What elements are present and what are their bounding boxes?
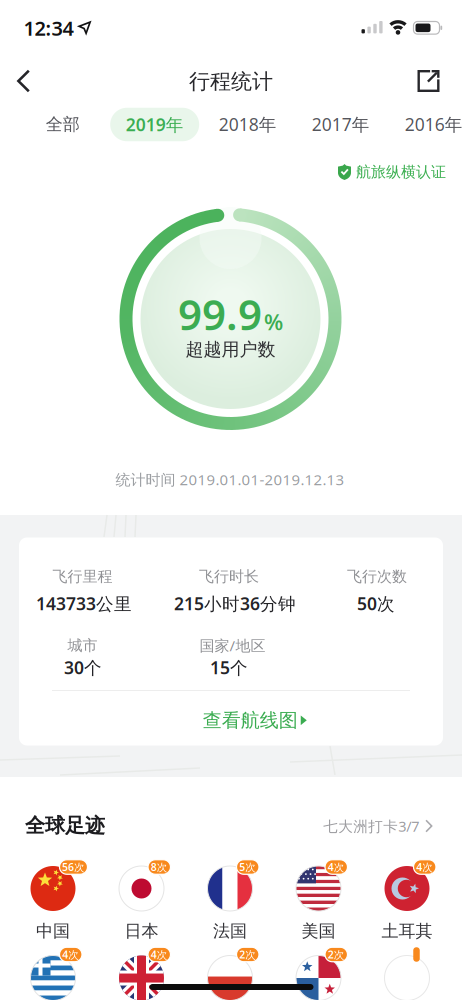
button[interactable]: 4次 bbox=[288, 848, 348, 940]
staticText: 4次 bbox=[416, 860, 433, 874]
staticText: 中国 bbox=[36, 920, 70, 942]
staticText: 全部 bbox=[46, 114, 80, 135]
staticText: 12:34 bbox=[23, 14, 73, 42]
staticText: 30个 bbox=[64, 656, 102, 679]
staticText: 土耳其 bbox=[381, 920, 432, 942]
button[interactable]: 56次 bbox=[23, 848, 83, 940]
staticText: 2017年 bbox=[312, 112, 370, 136]
staticText: 城市 bbox=[67, 636, 97, 655]
staticText: 统计时间 2019.01.01-2019.12.13 bbox=[115, 469, 344, 490]
button[interactable]: 2017年 bbox=[296, 107, 385, 141]
button[interactable]: 七大洲打卡3/7 bbox=[323, 816, 433, 836]
staticText: 99.9 bbox=[178, 285, 262, 343]
button[interactable]: 波兰 bbox=[200, 935, 260, 1000]
staticText: 飞行次数 bbox=[347, 567, 407, 586]
button[interactable]: 查看航线图 bbox=[203, 708, 307, 732]
button[interactable]: Back bbox=[2, 59, 46, 102]
button[interactable]: 5次 bbox=[200, 848, 260, 940]
staticText: 法国 bbox=[213, 920, 247, 942]
staticText: 2016年 bbox=[405, 112, 462, 136]
staticText: 超越用户数 bbox=[185, 338, 275, 361]
staticText: 8次 bbox=[151, 860, 168, 874]
staticText: 2019年 bbox=[126, 113, 184, 136]
staticText: 215小时36分钟 bbox=[174, 592, 296, 615]
button[interactable]: 全部 bbox=[28, 107, 98, 141]
button[interactable]: 更多国家 bbox=[377, 935, 437, 1000]
button[interactable]: 希腊 bbox=[23, 935, 83, 1000]
staticText: 4次 bbox=[328, 860, 345, 874]
staticText: 全球足迹 bbox=[25, 813, 105, 838]
staticText: 日本 bbox=[124, 920, 158, 942]
button[interactable]: 2018年 bbox=[203, 107, 292, 141]
staticText: 50次 bbox=[357, 592, 395, 615]
staticText: 4次 bbox=[62, 947, 79, 962]
staticText: 2次 bbox=[239, 947, 256, 962]
staticText: 5次 bbox=[239, 860, 256, 874]
button[interactable]: 英国 bbox=[111, 935, 171, 1000]
staticText: 4次 bbox=[151, 947, 168, 962]
staticText: 飞行时长 bbox=[199, 567, 259, 586]
staticText: 行程统计 bbox=[189, 68, 273, 95]
staticText: 2次 bbox=[328, 947, 345, 962]
staticText: 2018年 bbox=[219, 112, 277, 136]
staticText: 查看航线图 bbox=[203, 708, 298, 732]
button[interactable]: 2019年 bbox=[110, 108, 199, 141]
staticText: 143733公里 bbox=[36, 592, 132, 615]
button[interactable]: 4次 bbox=[377, 848, 437, 940]
staticText: 国家/地区 bbox=[199, 635, 265, 656]
button[interactable]: 航旅纵横认证 bbox=[338, 163, 446, 181]
button[interactable]: 巴拿马 bbox=[288, 935, 348, 1000]
staticText: % bbox=[264, 307, 283, 337]
staticText: 美国 bbox=[301, 920, 335, 942]
staticText: 航旅纵横认证 bbox=[356, 163, 446, 181]
staticText: 七大洲打卡3/7 bbox=[323, 816, 419, 836]
staticText: 56次 bbox=[62, 860, 85, 874]
staticText: 15个 bbox=[210, 656, 248, 679]
staticText: 飞行里程 bbox=[52, 567, 112, 586]
button[interactable]: Share bbox=[417, 70, 439, 92]
button[interactable]: 8次 bbox=[111, 848, 171, 940]
button[interactable]: 2016年 bbox=[389, 107, 462, 141]
